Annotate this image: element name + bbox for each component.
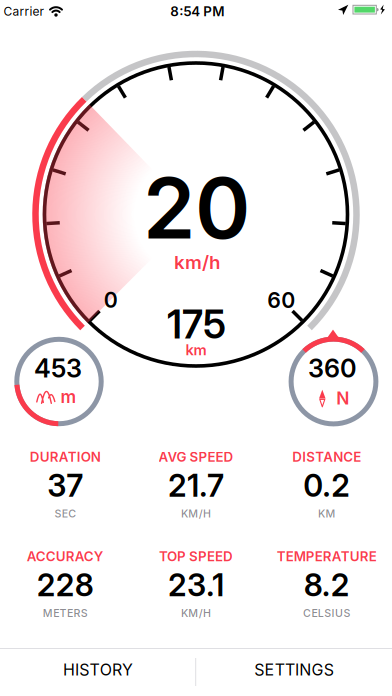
staticText: m [60,387,76,407]
staticText: SETTINGS [254,660,334,679]
staticText: TEMPERATURE [277,549,377,564]
staticText: TOP SPEED [159,549,233,564]
staticText: 0.2 [303,467,350,504]
staticText: ACCURACY [27,549,104,564]
staticText: 21.7 [168,467,224,504]
staticText: KM/H [181,507,211,520]
staticText: KM/H [181,607,211,619]
staticText: METERS [43,607,88,619]
button[interactable]: HISTORY [0,648,195,691]
staticText: CELSIUS [303,607,350,619]
staticText: 8:54 PM [170,3,224,19]
staticText: 360 [308,353,357,383]
staticText: KM [318,507,335,520]
button[interactable]: SETTINGS [196,648,391,691]
staticText: DURATION [30,449,101,465]
staticText: AVG SPEED [158,449,233,465]
staticText: 228 [37,567,94,603]
staticText: 20 [143,158,250,258]
staticText: 0 [104,287,118,313]
staticText: DISTANCE [292,449,361,465]
staticText: 23.1 [168,567,224,603]
staticText: 37 [47,467,83,504]
staticText: HISTORY [63,660,133,679]
staticText: N [336,388,349,408]
staticText: km [185,341,206,359]
staticText: 60 [267,288,295,313]
staticText: 453 [34,353,82,383]
staticText: km/h [174,251,220,273]
staticText: 8.2 [304,567,350,603]
staticText: Carrier [3,4,44,18]
staticText: SEC [54,507,76,520]
staticText: 175 [167,302,226,347]
